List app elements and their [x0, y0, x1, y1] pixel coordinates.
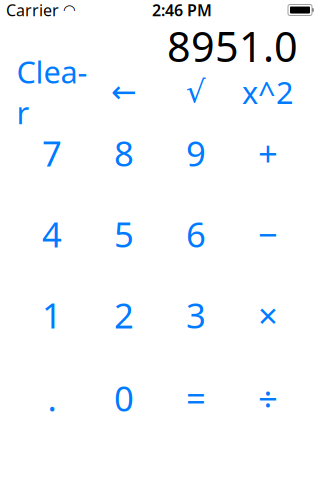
staticText: ◠: [63, 2, 76, 18]
button[interactable]: 0: [88, 359, 160, 437]
staticText: ×: [258, 292, 278, 338]
staticText: 2: [114, 292, 134, 338]
button[interactable]: 2: [88, 276, 160, 354]
button[interactable]: √: [160, 53, 232, 131]
button[interactable]: Clear: [16, 53, 88, 131]
staticText: 5: [114, 211, 134, 257]
staticText: 8: [114, 130, 134, 176]
button[interactable]: 6: [160, 195, 232, 273]
staticText: 0: [114, 375, 134, 421]
staticText: −: [258, 211, 278, 257]
button[interactable]: 5: [88, 195, 160, 273]
staticText: 8951.0: [167, 19, 298, 73]
staticText: 3: [186, 292, 206, 338]
button[interactable]: ×: [232, 276, 304, 354]
button[interactable]: 7: [16, 114, 88, 192]
staticText: Carrier: [6, 0, 59, 21]
button[interactable]: 4: [16, 195, 88, 273]
staticText: ÷: [258, 375, 278, 421]
button[interactable]: ←: [88, 53, 160, 131]
staticText: 6: [186, 211, 206, 257]
staticText: =: [186, 375, 206, 421]
button[interactable]: 1: [16, 276, 88, 354]
button[interactable]: x^2: [232, 53, 304, 131]
button[interactable]: −: [232, 195, 304, 273]
staticText: x^2: [242, 72, 294, 112]
button[interactable]: .: [16, 359, 88, 437]
button[interactable]: 9: [160, 114, 232, 192]
staticText: 1: [42, 292, 62, 338]
staticText: 4: [42, 211, 62, 257]
staticText: .: [47, 375, 56, 421]
button[interactable]: =: [160, 359, 232, 437]
staticText: 2:46 PM: [152, 0, 212, 21]
button[interactable]: ÷: [232, 359, 304, 437]
staticText: +: [258, 130, 278, 176]
staticText: Clear: [16, 51, 87, 133]
staticText: 9: [186, 130, 206, 176]
button[interactable]: 3: [160, 276, 232, 354]
staticText: 7: [42, 130, 62, 176]
staticText: √: [186, 75, 206, 109]
button[interactable]: +: [232, 114, 304, 192]
staticText: ←: [111, 75, 137, 109]
button[interactable]: 8: [88, 114, 160, 192]
